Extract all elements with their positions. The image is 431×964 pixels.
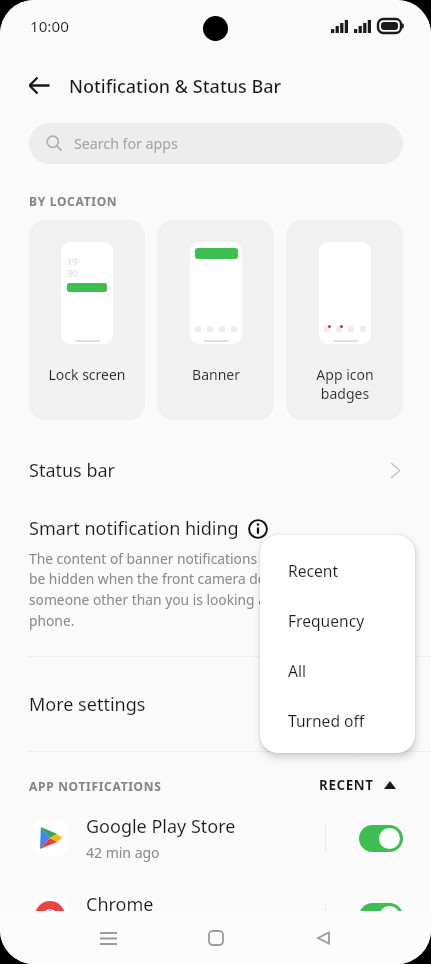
staticText: Recent (288, 560, 339, 581)
staticText: 42 min ago (86, 843, 160, 862)
staticText: All (288, 660, 307, 681)
staticText: APP NOTIFICATIONS (29, 778, 162, 794)
staticText: The content of banner notifications will… (29, 549, 301, 630)
button[interactable]: App icon badges (286, 220, 403, 420)
staticText: Banner (192, 365, 240, 384)
staticText: Google Play Store (86, 814, 236, 839)
button[interactable]: Google Play Store (0, 799, 431, 877)
staticText: Turned off (288, 710, 365, 731)
button[interactable]: Search for apps (29, 123, 403, 164)
staticText: 2 hours ago (86, 921, 165, 940)
staticText: App icon badges (316, 365, 374, 403)
staticText: 10:00 (30, 16, 69, 37)
staticText: Status bar (29, 458, 116, 483)
button[interactable]: Status bar (0, 444, 431, 496)
staticText: Frequency (288, 610, 365, 631)
button[interactable]: Toggle notifications for Chrome (359, 903, 403, 930)
button[interactable]: 19 (29, 220, 145, 420)
staticText: Chrome (86, 892, 154, 917)
button[interactable]: All (260, 645, 415, 695)
staticText: Smart notification hiding (29, 516, 239, 541)
staticText: Lock screen (48, 365, 126, 384)
button[interactable]: RECENT (313, 772, 402, 798)
staticText: 19 (67, 255, 78, 267)
staticText: Notification & Status Bar (69, 74, 282, 99)
button[interactable]: Back (18, 64, 60, 106)
button[interactable]: Home (196, 918, 236, 958)
button[interactable]: Toggle notifications for Google Play Sto… (359, 825, 403, 852)
staticText: RECENT (319, 776, 374, 794)
button[interactable]: Recent apps (88, 918, 128, 958)
staticText: BY LOCATION (29, 193, 118, 209)
button[interactable]: Frequency (260, 595, 415, 645)
button[interactable]: Recent (260, 545, 415, 595)
button[interactable]: Banner (157, 220, 274, 420)
button[interactable]: More settings (0, 657, 431, 751)
button[interactable]: Back (303, 918, 343, 958)
button[interactable]: Turned off (260, 695, 415, 745)
staticText: 30 (67, 267, 78, 279)
staticText: Search for apps (74, 134, 178, 153)
staticText: More settings (29, 692, 146, 717)
button[interactable]: Chrome (0, 877, 431, 955)
